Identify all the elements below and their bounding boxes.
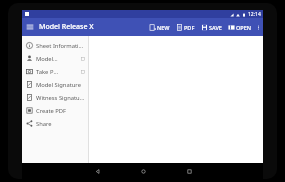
button[interactable]: Share bbox=[22, 117, 88, 130]
staticText: Model Signature bbox=[36, 81, 81, 89]
button[interactable]: NEW bbox=[146, 18, 173, 36]
button[interactable]: Model Signature bbox=[22, 78, 88, 91]
staticText: Witness Signature bbox=[36, 94, 85, 102]
staticText: PDF bbox=[184, 24, 195, 31]
button[interactable]: Create PDF bbox=[22, 104, 88, 117]
button[interactable]: Model's Info bbox=[22, 52, 88, 65]
staticText: NEW bbox=[157, 24, 170, 31]
button[interactable]: Open navigation drawer bbox=[22, 18, 38, 36]
staticText: Share bbox=[36, 120, 52, 128]
staticText: Model Release X bbox=[39, 22, 94, 32]
button[interactable]: Sheet Information bbox=[22, 39, 88, 52]
button[interactable]: Recent apps bbox=[166, 163, 212, 179]
staticText: Model's Info bbox=[36, 55, 58, 63]
button[interactable]: Home bbox=[120, 163, 166, 179]
staticText: Take Photo of ID bbox=[36, 68, 58, 76]
button[interactable]: Take Photo of ID bbox=[22, 65, 88, 78]
button[interactable]: Witness Signature bbox=[22, 91, 88, 104]
button[interactable]: OPEN bbox=[225, 18, 254, 36]
staticText: Create PDF bbox=[36, 107, 67, 115]
button[interactable]: PDF bbox=[173, 18, 198, 36]
staticText: OPEN bbox=[236, 24, 251, 31]
staticText: SAVE bbox=[209, 24, 222, 31]
button[interactable]: SAVE bbox=[198, 18, 225, 36]
staticText: 12:14 bbox=[248, 11, 261, 18]
button[interactable]: More options bbox=[254, 18, 263, 36]
button[interactable]: Back bbox=[74, 163, 120, 179]
staticText: Sheet Information bbox=[36, 42, 85, 50]
